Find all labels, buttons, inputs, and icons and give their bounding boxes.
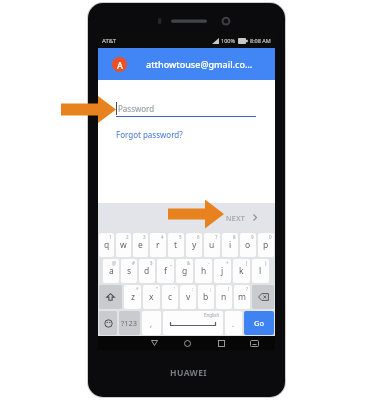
button[interactable]: , bbox=[142, 311, 161, 335]
button[interactable]: x bbox=[143, 285, 160, 309]
button[interactable]: n bbox=[216, 285, 232, 309]
button[interactable]: j bbox=[214, 259, 231, 283]
staticText: - bbox=[208, 260, 210, 266]
button[interactable]: a bbox=[103, 259, 119, 283]
staticText: f bbox=[164, 265, 167, 277]
button[interactable]: c bbox=[162, 285, 178, 309]
button[interactable]: Emoji bbox=[99, 311, 117, 335]
staticText: NEXT bbox=[226, 213, 246, 223]
staticText: m bbox=[238, 291, 246, 303]
staticText: ? bbox=[246, 286, 248, 292]
button[interactable]: o bbox=[240, 233, 256, 257]
staticText: 9 bbox=[251, 234, 254, 240]
staticText: 5 bbox=[179, 234, 182, 240]
button[interactable]: k bbox=[233, 259, 250, 283]
button[interactable]: e bbox=[133, 233, 148, 257]
button[interactable]: u bbox=[204, 233, 220, 257]
button[interactable]: v bbox=[180, 285, 196, 309]
staticText: 2 bbox=[126, 234, 129, 240]
staticText: y bbox=[192, 239, 197, 251]
staticText: z bbox=[131, 291, 135, 303]
staticText: + bbox=[226, 260, 229, 266]
button[interactable]: q bbox=[99, 233, 114, 257]
button[interactable]: Password bbox=[116, 99, 256, 117]
staticText: 1 bbox=[109, 234, 112, 240]
staticText: h bbox=[201, 265, 207, 277]
staticText: $ bbox=[150, 260, 153, 266]
staticText: 6 bbox=[197, 234, 200, 240]
staticText: ( bbox=[246, 260, 248, 266]
staticText: ) bbox=[265, 260, 267, 266]
button[interactable]: Backspace bbox=[252, 285, 274, 309]
staticText: k bbox=[239, 265, 244, 277]
staticText: ! bbox=[228, 286, 230, 292]
button[interactable]: l bbox=[252, 259, 269, 283]
button[interactable]: Recent apps bbox=[208, 336, 234, 350]
staticText: 0 bbox=[269, 234, 272, 240]
staticText: w bbox=[120, 239, 127, 251]
staticText: n bbox=[221, 291, 227, 303]
button[interactable]: NEXT bbox=[216, 203, 275, 232]
staticText: # bbox=[132, 260, 135, 266]
staticText: 8:08 AM bbox=[250, 37, 271, 44]
staticText: " bbox=[156, 286, 158, 292]
staticText: q bbox=[104, 239, 110, 251]
staticText: o bbox=[245, 239, 251, 251]
button[interactable]: . bbox=[225, 311, 242, 335]
staticText: Forgot password? bbox=[116, 129, 183, 140]
button[interactable]: b bbox=[198, 285, 214, 309]
button[interactable]: t bbox=[168, 233, 184, 257]
button[interactable]: h bbox=[195, 259, 212, 283]
button[interactable]: f bbox=[157, 259, 174, 283]
staticText: Password bbox=[118, 103, 155, 114]
staticText: t bbox=[174, 239, 178, 251]
button[interactable]: r bbox=[150, 233, 166, 257]
staticText: & bbox=[187, 260, 191, 266]
staticText: u bbox=[209, 239, 215, 251]
staticText: 100% bbox=[221, 37, 236, 44]
button[interactable]: s bbox=[121, 259, 137, 283]
button[interactable]: p bbox=[258, 233, 274, 257]
staticText: , bbox=[150, 318, 153, 329]
staticText: p bbox=[263, 239, 269, 251]
staticText: 3 bbox=[143, 234, 146, 240]
staticText: 7 bbox=[215, 234, 218, 240]
button[interactable]: Shift bbox=[99, 285, 122, 309]
button[interactable]: Forgot password? bbox=[115, 127, 184, 142]
staticText: l bbox=[259, 265, 262, 277]
button[interactable]: g bbox=[176, 259, 193, 283]
staticText: atthowtouse@gmail.co… bbox=[146, 58, 253, 70]
button[interactable]: Space bbox=[163, 311, 223, 335]
staticText: 8 bbox=[233, 234, 236, 240]
staticText: v bbox=[186, 291, 191, 303]
staticText: ; bbox=[210, 286, 212, 292]
staticText: A bbox=[117, 59, 123, 71]
button[interactable]: m bbox=[234, 285, 250, 309]
staticText: j bbox=[221, 265, 224, 277]
button[interactable]: Go bbox=[244, 311, 274, 335]
button[interactable]: d bbox=[139, 259, 155, 283]
staticText: AT&T bbox=[102, 37, 116, 45]
button[interactable]: i bbox=[222, 233, 238, 257]
staticText: HUAWEI bbox=[170, 367, 208, 379]
staticText: e bbox=[138, 239, 143, 251]
staticText: _ bbox=[170, 260, 172, 266]
button[interactable]: Hide keyboard bbox=[241, 336, 267, 350]
staticText: ' bbox=[174, 286, 176, 292]
button[interactable]: A bbox=[98, 48, 275, 80]
button[interactable]: ?123 bbox=[119, 311, 140, 335]
staticText: s bbox=[127, 265, 132, 277]
staticText: : bbox=[192, 286, 194, 292]
button[interactable]: z bbox=[124, 285, 141, 309]
button[interactable]: w bbox=[116, 233, 131, 257]
staticText: d bbox=[144, 265, 150, 277]
staticText: @ bbox=[112, 260, 117, 266]
button[interactable]: Home bbox=[174, 336, 200, 350]
staticText: Go bbox=[254, 318, 264, 328]
button[interactable]: y bbox=[186, 233, 202, 257]
staticText: x bbox=[149, 291, 154, 303]
staticText: a bbox=[109, 265, 114, 277]
staticText: c bbox=[168, 291, 173, 303]
staticText: r bbox=[156, 239, 160, 251]
button[interactable]: Back bbox=[141, 336, 167, 350]
